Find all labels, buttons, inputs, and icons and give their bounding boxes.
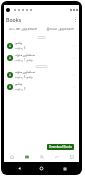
button[interactable]: Home xyxy=(37,164,46,173)
staticText: வகுப்பு 7 தமிழ் xyxy=(15,58,33,62)
button[interactable]: Row menu xyxy=(71,43,77,49)
staticText: வகுப்பு 9 xyxy=(15,87,26,91)
staticText: சமூகஅறிவியல் xyxy=(15,54,35,57)
staticText: தமிழ் xyxy=(15,42,22,45)
staticText: Download Books xyxy=(49,145,72,149)
staticText: Today xyxy=(38,36,45,39)
button[interactable]: தமிழ் xyxy=(4,40,79,52)
button[interactable]: தமிழ் xyxy=(4,81,79,93)
button[interactable]: Row menu xyxy=(71,72,77,78)
button[interactable]: கட்டண புத்தகங்கள் xyxy=(4,24,41,32)
button[interactable]: Download Books xyxy=(47,144,74,150)
button[interactable]: Profile xyxy=(64,151,79,162)
staticText: இலவச புத்தகங்கள் xyxy=(46,26,74,31)
button[interactable]: Recents xyxy=(60,164,69,173)
staticText: தமிழ் xyxy=(15,83,22,86)
button[interactable]: Row menu xyxy=(71,84,77,90)
staticText: Yesterday xyxy=(36,65,47,68)
button[interactable]: Back xyxy=(15,164,24,173)
staticText: வகுப்பு 6 தமிழ் xyxy=(15,75,33,79)
staticText: வகுப்பு 6 xyxy=(15,46,26,50)
button[interactable]: Today xyxy=(37,36,46,39)
staticText: Books xyxy=(6,16,22,23)
button[interactable]: More options xyxy=(71,15,79,23)
button[interactable]: Books xyxy=(19,151,34,162)
button[interactable]: Row menu xyxy=(71,55,77,61)
staticText: சமூகஅறிவியல் xyxy=(15,71,35,74)
button[interactable]: இலவச புத்தகங்கள் xyxy=(41,24,79,32)
button[interactable]: Home xyxy=(4,151,19,162)
button[interactable]: சமூகஅறிவியல் xyxy=(4,52,79,64)
button[interactable]: Search xyxy=(34,151,49,162)
button[interactable]: சமூகஅறிவியல் xyxy=(4,69,79,81)
staticText: கட்டண புத்தகங்கள் xyxy=(9,26,37,31)
button[interactable]: Trending xyxy=(49,151,64,162)
button[interactable]: Yesterday xyxy=(35,65,48,68)
